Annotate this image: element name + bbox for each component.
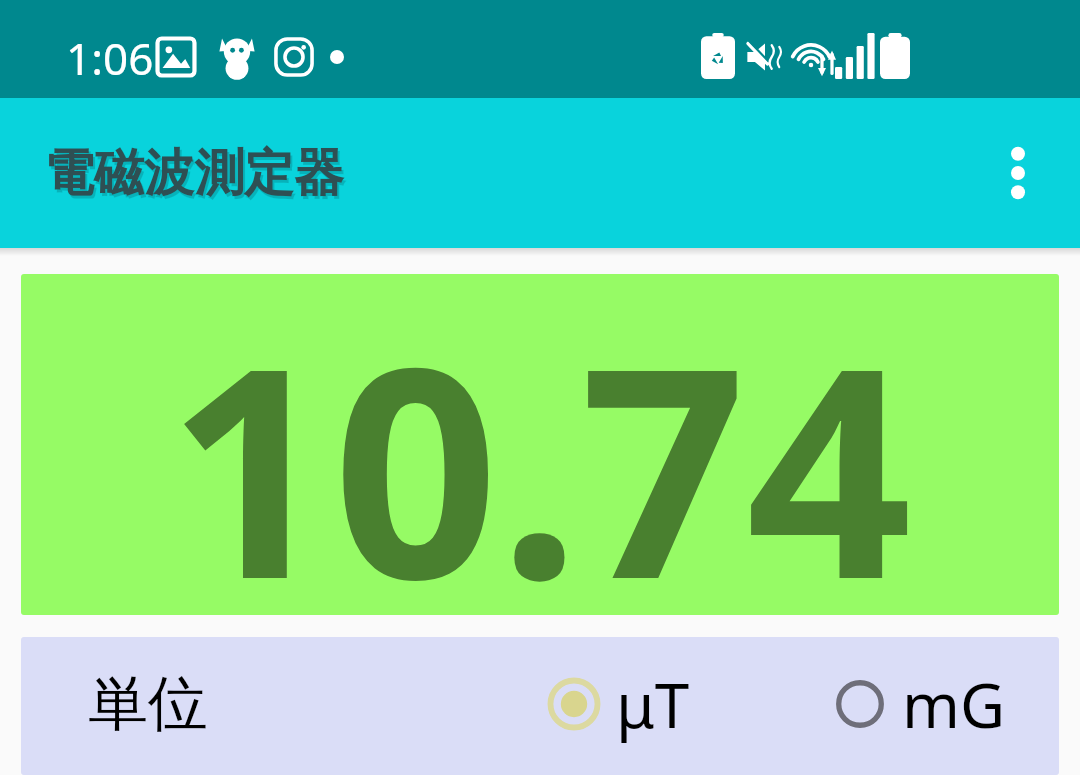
button[interactable]: More options: [978, 133, 1058, 213]
staticText: mG: [902, 662, 1006, 746]
staticText: 電磁波測定器: [46, 145, 346, 208]
staticText: 10.74: [167, 274, 913, 609]
staticText: 電磁波測定器: [44, 142, 344, 205]
button[interactable]: 10.74: [21, 274, 1059, 615]
staticText: μT: [616, 662, 690, 746]
button[interactable]: μT: [542, 656, 694, 752]
staticText: 1:06: [66, 28, 154, 88]
button[interactable]: mG: [828, 656, 1010, 752]
staticText: 単位: [88, 666, 208, 742]
